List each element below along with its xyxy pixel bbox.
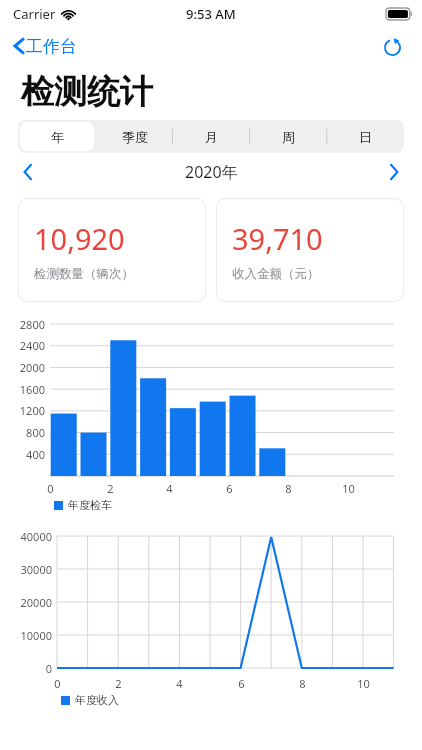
staticText: 工作台 — [26, 36, 77, 57]
staticText: 10 — [357, 676, 370, 691]
button[interactable]: 年 — [20, 122, 94, 151]
staticText: 年度检车 — [68, 498, 112, 512]
staticText: 8 — [285, 481, 292, 496]
staticText: 8 — [299, 676, 306, 691]
staticText: 800 — [26, 425, 45, 440]
staticText: 400 — [26, 447, 45, 462]
button[interactable]: Next year — [379, 157, 409, 187]
staticText: 0 — [45, 661, 52, 676]
staticText: 检测统计 — [21, 71, 153, 113]
button[interactable]: 10,920 — [18, 198, 206, 302]
button[interactable]: Previous year — [13, 157, 43, 187]
staticText: 9:53 AM — [186, 5, 236, 23]
staticText: 1600 — [19, 382, 45, 397]
button[interactable]: 月 — [175, 122, 248, 151]
button[interactable]: 周 — [252, 122, 325, 151]
staticText: 2800 — [19, 317, 45, 332]
button[interactable]: 季度 — [98, 122, 171, 151]
staticText: 年 — [51, 129, 64, 145]
button[interactable]: 39,710 — [216, 198, 404, 302]
staticText: 月 — [205, 129, 218, 145]
staticText: 2 — [115, 676, 122, 691]
staticText: 4 — [176, 676, 183, 691]
staticText: 0 — [54, 676, 61, 691]
staticText: 39,710 — [232, 219, 323, 258]
staticText: 年度收入 — [75, 693, 119, 707]
staticText: 日 — [359, 129, 372, 145]
staticText: 10 — [342, 481, 355, 496]
button[interactable]: 日 — [329, 122, 402, 151]
staticText: Carrier — [13, 5, 56, 23]
staticText: 0 — [47, 481, 54, 496]
staticText: 检测数量（辆次） — [34, 266, 134, 282]
staticText: 40000 — [20, 529, 52, 544]
staticText: 10000 — [20, 628, 52, 643]
staticText: 周 — [282, 129, 295, 145]
staticText: 10,920 — [34, 219, 125, 258]
staticText: 2000 — [19, 360, 45, 375]
staticText: 30000 — [20, 562, 52, 577]
staticText: 2020年 — [185, 161, 238, 183]
staticText: 季度 — [122, 129, 148, 145]
button[interactable]: 工作台 — [0, 28, 89, 64]
staticText: 2 — [107, 481, 114, 496]
staticText: 2400 — [19, 338, 45, 353]
staticText: 4 — [166, 481, 173, 496]
staticText: 收入金额（元） — [232, 266, 320, 282]
button[interactable]: Refresh — [378, 32, 406, 60]
staticText: 20000 — [20, 595, 52, 610]
staticText: 1200 — [19, 403, 45, 418]
staticText: 6 — [226, 481, 233, 496]
staticText: 6 — [238, 676, 245, 691]
